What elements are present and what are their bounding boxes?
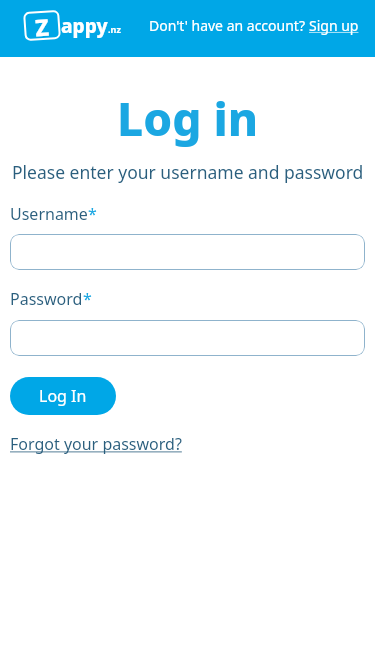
button[interactable]: Sign up (309, 16, 359, 35)
staticText: Log In (39, 385, 87, 407)
staticText: Please enter your username and password (12, 160, 364, 184)
staticText: * (88, 203, 97, 225)
staticText: .nz (108, 23, 121, 35)
staticText: Username (10, 203, 88, 225)
staticText: Forgot your password? (10, 433, 182, 455)
button[interactable]: Log In (10, 377, 116, 415)
staticText: * (83, 288, 92, 310)
button[interactable]: Z (24, 11, 121, 40)
staticText: Sign up (309, 16, 359, 35)
button[interactable] (10, 234, 365, 270)
staticText: Don't' have an account? (149, 16, 309, 35)
staticText: Log in (117, 87, 259, 150)
staticText: Z (34, 10, 50, 40)
staticText: appy (61, 13, 108, 39)
button[interactable] (10, 320, 365, 356)
staticText: Password (10, 288, 83, 310)
button[interactable]: Forgot your password? (10, 433, 182, 455)
